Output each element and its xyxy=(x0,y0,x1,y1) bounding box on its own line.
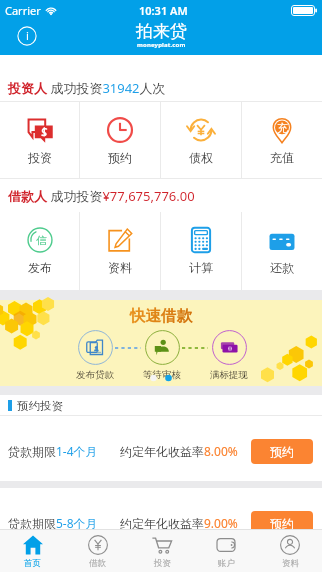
button[interactable]: Step xyxy=(212,330,247,365)
staticText: 投资 xyxy=(154,558,171,569)
staticText: 贷款期限1-4个月 xyxy=(8,443,98,459)
staticText: 贷款期限5-8个月 xyxy=(8,515,98,531)
button[interactable]: Step xyxy=(78,330,113,365)
button[interactable]: 资料 xyxy=(258,530,322,572)
staticText: 首页 xyxy=(24,558,41,569)
staticText: 发布 xyxy=(28,260,52,275)
button[interactable]: 预约 xyxy=(251,511,313,536)
staticText: 发布贷款 xyxy=(76,369,114,381)
staticText: 投资人 成功投资31942人次 xyxy=(8,79,166,97)
button[interactable]: 借款 xyxy=(65,530,130,572)
button[interactable]: 预约 xyxy=(80,102,160,178)
button[interactable]: 充 xyxy=(242,102,322,178)
button[interactable]: 信 xyxy=(0,212,79,290)
staticText: 快速借款 xyxy=(130,306,192,326)
staticText: 等待审核 xyxy=(143,369,181,381)
button[interactable]: 投资 xyxy=(0,102,79,178)
staticText: 资料 xyxy=(108,260,132,275)
button[interactable]: Step xyxy=(145,330,180,365)
staticText: 约定年化收益率8.00% xyxy=(120,443,238,459)
staticText: 预约 xyxy=(270,516,294,531)
button[interactable]: 预约 xyxy=(251,439,313,464)
button[interactable]: 计算 xyxy=(161,212,241,290)
staticText: Carrier xyxy=(5,3,41,18)
staticText: 预约投资 xyxy=(17,399,63,413)
staticText: 预约 xyxy=(108,150,132,165)
staticText: 账户 xyxy=(218,558,235,569)
staticText: 计算 xyxy=(189,260,213,275)
staticText: 债权 xyxy=(189,150,213,165)
staticText: 投资 xyxy=(28,150,52,165)
staticText: 还款 xyxy=(270,260,294,275)
staticText: moneyplat.com xyxy=(137,41,186,49)
staticText: 满标提现 xyxy=(210,369,248,381)
staticText: 充 xyxy=(277,121,288,135)
button[interactable]: 债权 xyxy=(161,102,241,178)
button[interactable]: Info xyxy=(17,26,37,46)
button[interactable]: 首页 xyxy=(0,530,65,572)
staticText: 资料 xyxy=(282,558,299,569)
staticText: 约定年化收益率9.00% xyxy=(120,515,238,531)
button[interactable]: 还款 xyxy=(242,212,322,290)
staticText: 10:31 AM xyxy=(139,3,188,18)
staticText: 借款人 成功投资¥77,675,776.00 xyxy=(8,187,195,205)
staticText: 充值 xyxy=(270,150,294,165)
staticText: 借款 xyxy=(89,558,106,569)
staticText: 预约 xyxy=(270,444,294,459)
staticText: 信 xyxy=(36,234,47,247)
button[interactable]: 账户 xyxy=(194,530,258,572)
button[interactable]: 投资 xyxy=(130,530,194,572)
staticText: i xyxy=(26,28,29,44)
button[interactable]: 资料 xyxy=(80,212,160,290)
staticText: 拍来贷 xyxy=(136,21,187,42)
